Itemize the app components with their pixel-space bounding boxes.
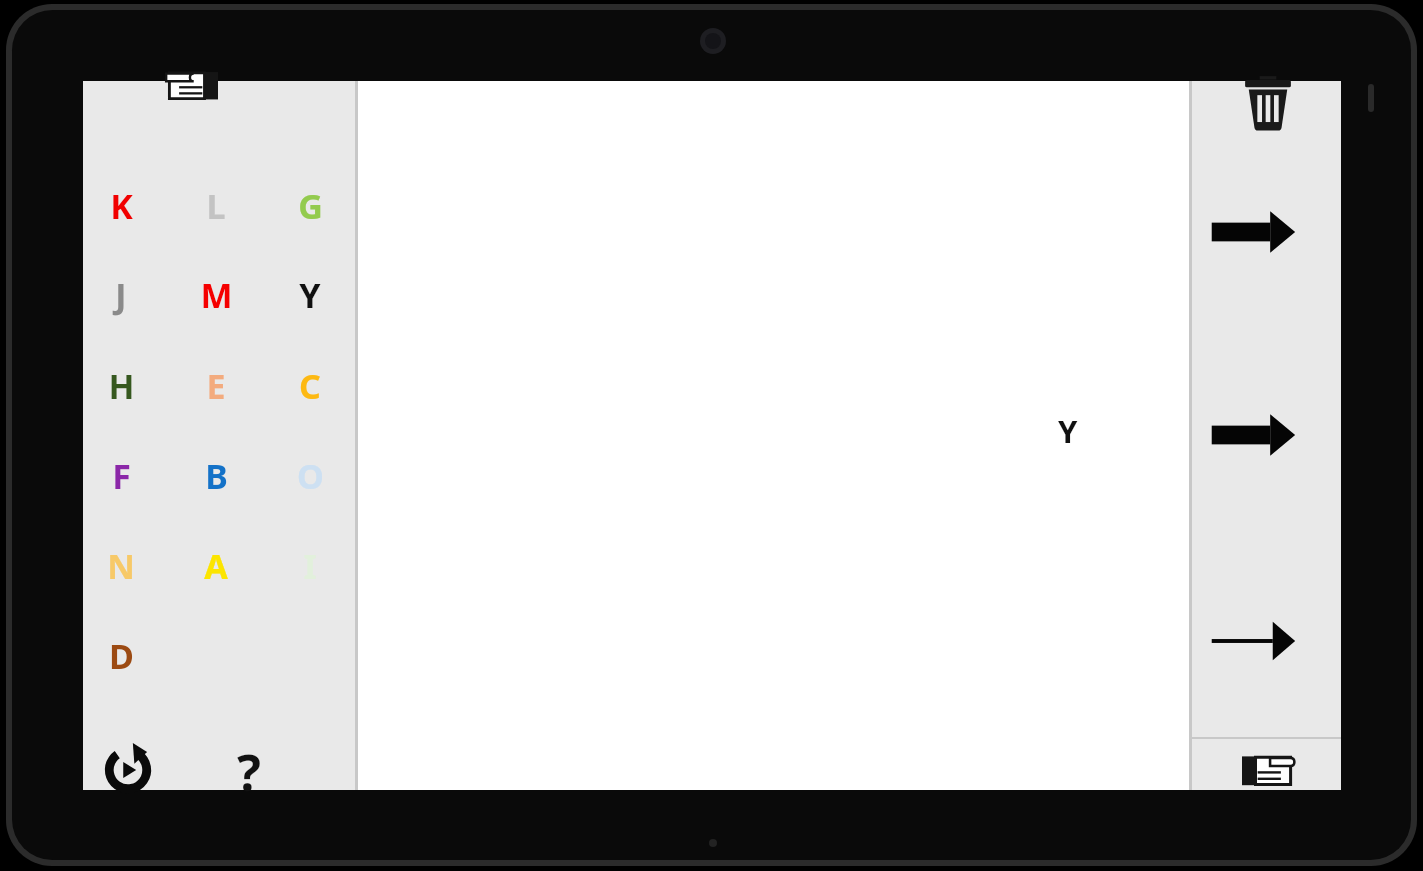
staticText: B <box>205 453 228 499</box>
staticText: C <box>299 363 321 409</box>
button[interactable]: Y <box>280 268 340 322</box>
button[interactable]: Previous page <box>164 66 218 104</box>
staticText: H <box>108 363 135 409</box>
button[interactable]: D <box>91 629 151 683</box>
button[interactable]: C <box>280 359 340 413</box>
staticText: E <box>206 363 226 409</box>
staticText: O <box>297 453 324 499</box>
staticText: J <box>115 272 127 318</box>
staticText: K <box>110 183 133 229</box>
button[interactable]: Next page <box>1242 750 1296 790</box>
button[interactable]: Delete <box>1242 75 1294 131</box>
button[interactable]: Refresh <box>102 744 154 796</box>
button[interactable]: Y <box>1042 407 1094 455</box>
button[interactable]: J <box>91 268 151 322</box>
button[interactable]: B <box>186 449 246 503</box>
staticText: M <box>200 272 233 318</box>
button[interactable]: A <box>186 539 246 593</box>
staticText: A <box>204 543 228 589</box>
staticText: N <box>107 543 135 589</box>
button[interactable]: N <box>91 539 151 593</box>
button[interactable]: Next <box>1210 409 1296 461</box>
staticText: Y <box>1058 410 1078 452</box>
staticText: ? <box>237 738 261 802</box>
staticText: L <box>206 183 226 229</box>
button[interactable]: K <box>91 179 151 233</box>
button[interactable]: M <box>186 268 246 322</box>
button[interactable]: Next <box>1210 615 1296 667</box>
staticText: Y <box>299 272 321 318</box>
button[interactable]: O <box>280 449 340 503</box>
button[interactable]: H <box>91 359 151 413</box>
button[interactable]: Next <box>1210 206 1296 258</box>
button[interactable]: L <box>186 179 246 233</box>
staticText: G <box>298 183 323 229</box>
button[interactable]: F <box>91 449 151 503</box>
button[interactable]: G <box>280 179 340 233</box>
button[interactable]: E <box>186 359 246 413</box>
staticText: F <box>112 453 131 499</box>
staticText: I <box>303 543 317 589</box>
staticText: D <box>109 633 134 679</box>
button[interactable]: Help <box>221 738 277 802</box>
